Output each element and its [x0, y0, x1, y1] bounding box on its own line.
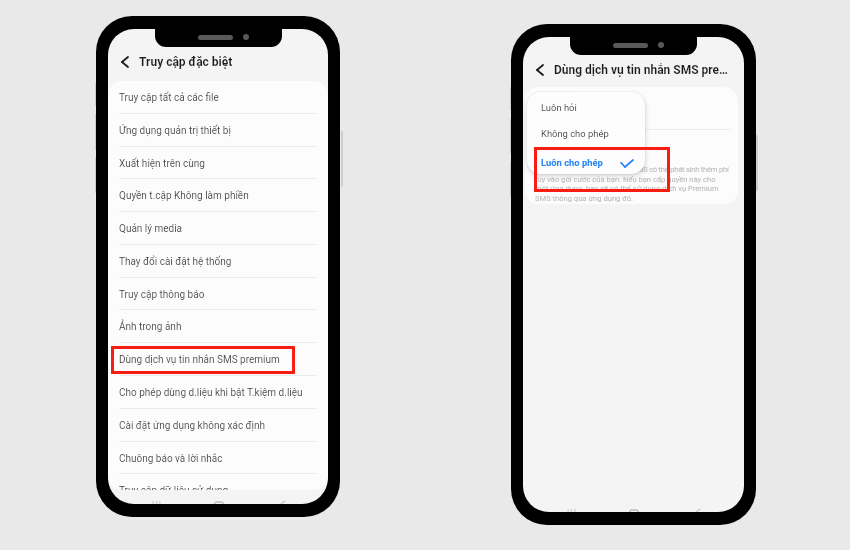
button[interactable]: Back [531, 61, 549, 79]
button[interactable]: Cho phép dùng d.liệu khi bật T.kiệm d.li… [108, 376, 328, 409]
button[interactable]: Cài đặt ứng dụng không xác định [108, 409, 328, 442]
staticText: Cho phép dùng d.liệu khi bật T.kiệm d.li… [119, 387, 303, 399]
staticText: Thay đổi cài đặt hệ thống [119, 256, 232, 268]
staticText: Truy cập đặc biệt [139, 55, 233, 69]
button[interactable]: Luôn cho phép [527, 150, 645, 174]
staticText: Dùng dịch vụ tin nhắn SMS premium [119, 354, 280, 366]
button[interactable]: Truy cập thông báo [108, 278, 328, 311]
button[interactable]: Ứng dụng quản trị thiết bị [108, 114, 328, 147]
staticText: Quyền t.cập Không làm phiền [119, 190, 249, 202]
staticText: Truy cập tất cả các file [119, 92, 219, 104]
button[interactable]: Thay đổi cài đặt hệ thống [108, 245, 328, 278]
button[interactable]: Recent apps [561, 503, 581, 512]
button[interactable]: Back [116, 53, 134, 71]
staticText: Truy cập dữ liệu sử dụng [119, 485, 229, 490]
button[interactable]: Ảnh trong ảnh [108, 310, 328, 343]
staticText: Ảnh trong ảnh [119, 321, 182, 333]
button[interactable]: Quyền t.cập Không làm phiền [108, 179, 328, 212]
staticText: Không cho phép [541, 128, 609, 139]
staticText: Truy cập thông báo [119, 289, 205, 301]
button[interactable]: Back [687, 503, 707, 512]
button[interactable]: Chuông báo và lời nhắc [108, 442, 328, 475]
button[interactable]: Truy cập dữ liệu sử dụng [108, 474, 328, 490]
button[interactable]: Home [624, 503, 644, 512]
staticText: Quản lý media [119, 223, 183, 235]
staticText: Luôn hỏi [541, 102, 577, 113]
staticText: Ứng dụng quản trị thiết bị [119, 125, 231, 137]
button[interactable]: Home [209, 495, 229, 504]
button[interactable]: Không cho phép [527, 121, 645, 146]
button[interactable]: Quản lý media [108, 212, 328, 245]
staticText: SMS thông qua ứng dụng đó. [535, 194, 634, 203]
staticText: Cài đặt ứng dụng không xác định [119, 420, 266, 432]
button[interactable]: Back [272, 495, 292, 504]
button[interactable]: Luôn hỏi [527, 95, 645, 120]
staticText: Dùng dịch vụ tin nhắn SMS pre… [554, 63, 728, 77]
staticText: một ứng dụng, bạn sẽ có thể sử dụng dịch… [535, 184, 719, 193]
staticText: Chuông báo và lời nhắc [119, 453, 223, 465]
button[interactable]: Truy cập tất cả các file [108, 81, 328, 114]
staticText: Xuất hiện trên cùng [119, 158, 205, 170]
staticText: Việc sử dụng dịch vụ Premium SMS có thể … [535, 165, 729, 174]
staticText: tùy vào gói cước của bạn. Nếu bạn cấp qu… [535, 175, 716, 184]
button[interactable]: Xuất hiện trên cùng [108, 147, 328, 180]
staticText: Luôn cho phép [541, 157, 603, 168]
button[interactable]: Recent apps [146, 495, 166, 504]
button[interactable]: Dùng dịch vụ tin nhắn SMS premium [108, 343, 328, 376]
